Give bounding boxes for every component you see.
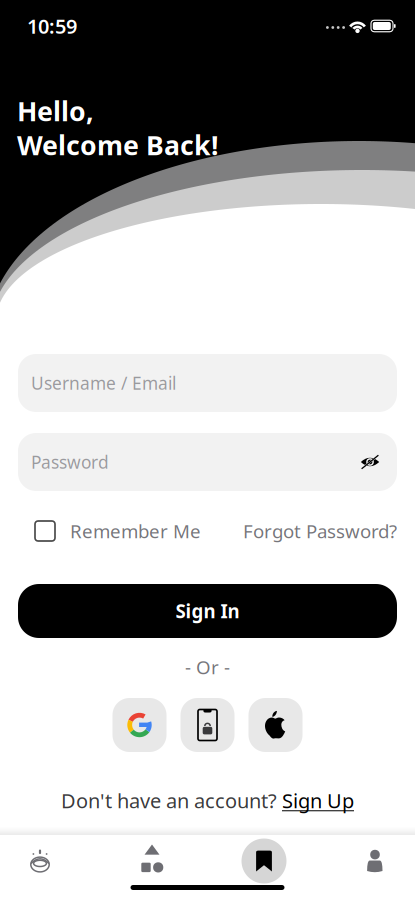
button[interactable]: Sign in with Apple xyxy=(248,698,302,752)
button[interactable]: Categories xyxy=(112,838,192,884)
staticText: Username / Email xyxy=(31,371,176,394)
button[interactable]: Don't have an account? xyxy=(61,791,354,810)
button[interactable]: Sign in with passkey xyxy=(180,698,234,752)
button[interactable]: Discover xyxy=(0,838,80,884)
staticText: - Or - xyxy=(185,655,230,679)
staticText: 10:59 xyxy=(27,13,77,39)
staticText: Remember Me xyxy=(70,519,201,543)
button[interactable]: Forgot Password? xyxy=(243,521,397,541)
staticText: Don't have an account? xyxy=(61,787,282,814)
button[interactable]: Remember Me xyxy=(35,521,201,541)
button[interactable]: Sign In xyxy=(18,584,397,638)
staticText: Password xyxy=(31,450,109,473)
staticText: Sign In xyxy=(175,599,239,623)
staticText: Forgot Password? xyxy=(243,519,397,543)
button[interactable]: Sign in with Google xyxy=(112,698,166,752)
staticText: Welcome Back! xyxy=(17,127,219,163)
staticText: Sign Up xyxy=(282,787,354,814)
staticText: Hello, xyxy=(17,93,94,129)
button[interactable]: Saved xyxy=(224,838,304,884)
button[interactable]: Profile xyxy=(335,838,415,884)
